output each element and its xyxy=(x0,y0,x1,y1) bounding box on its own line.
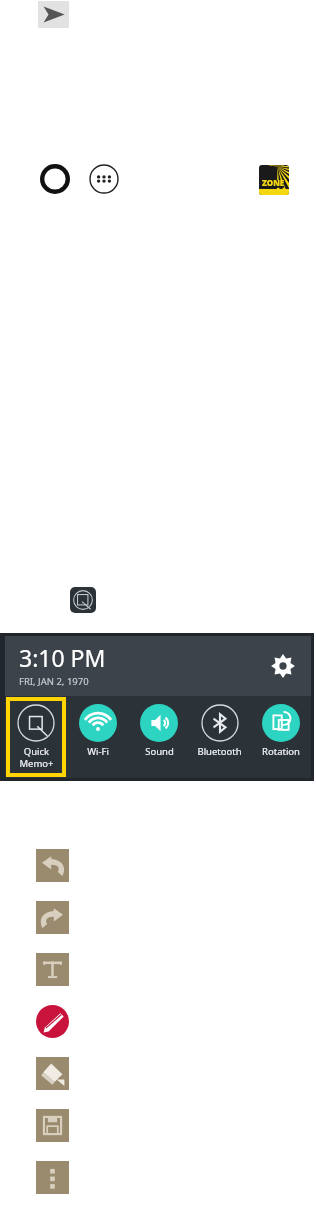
button[interactable]: Tool xyxy=(36,849,69,882)
button[interactable]: Bluetooth xyxy=(189,696,250,778)
staticText: 3:10 PM xyxy=(19,642,106,673)
button[interactable]: Pen xyxy=(36,1005,69,1038)
button[interactable]: Settings xyxy=(270,653,296,679)
button[interactable]: Text xyxy=(36,953,69,986)
staticText: Sound xyxy=(145,745,174,758)
button[interactable]: Zone app xyxy=(259,165,289,195)
staticText: Rotation xyxy=(262,745,300,758)
button[interactable]: Eraser xyxy=(36,1057,69,1090)
button[interactable]: Rotation xyxy=(250,696,311,778)
staticText: Quick Memo+ xyxy=(19,745,54,769)
button[interactable]: Home xyxy=(39,163,71,195)
button[interactable]: Quick Memo+ xyxy=(10,701,62,773)
button[interactable]: QuickMemo+ xyxy=(70,587,96,613)
button[interactable]: More options xyxy=(36,1161,69,1194)
button[interactable]: Apps xyxy=(88,163,120,195)
staticText: Bluetooth xyxy=(197,745,242,758)
button[interactable]: Wi-Fi xyxy=(67,696,128,778)
staticText: FRI, JAN 2, 1970 xyxy=(19,675,89,688)
staticText: ZONE xyxy=(262,177,285,188)
button[interactable]: Sound xyxy=(128,696,189,778)
staticText: Wi-Fi xyxy=(87,745,109,758)
button[interactable]: Save xyxy=(36,1109,69,1142)
button[interactable]: Tool xyxy=(36,901,69,934)
button[interactable]: Send xyxy=(38,1,69,28)
